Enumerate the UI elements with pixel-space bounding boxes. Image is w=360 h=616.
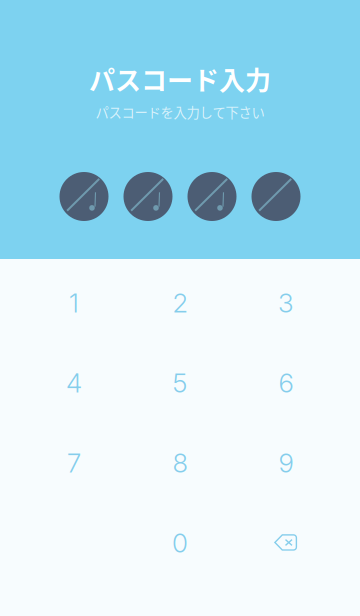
staticText: 7: [67, 447, 81, 479]
button[interactable]: 4: [21, 343, 127, 423]
staticText: 1: [69, 287, 79, 319]
button[interactable]: 3: [233, 263, 339, 343]
button[interactable]: 5: [127, 343, 233, 423]
staticText: パスコード入力: [89, 60, 271, 98]
staticText: 0: [172, 527, 188, 559]
button[interactable]: 7: [21, 423, 127, 503]
staticText: 6: [278, 367, 293, 399]
button[interactable]: 1: [21, 263, 127, 343]
button[interactable]: 6: [233, 343, 339, 423]
staticText: 8: [172, 447, 187, 479]
button[interactable]: 2: [127, 263, 233, 343]
staticText: 9: [278, 447, 293, 479]
staticText: 4: [66, 367, 82, 399]
staticText: 3: [278, 287, 294, 319]
button[interactable]: 9: [233, 423, 339, 503]
staticText: 2: [172, 287, 187, 319]
staticText: パスコードを入力して下さい: [95, 102, 264, 122]
button[interactable]: 0: [127, 503, 233, 583]
staticText: 5: [172, 367, 187, 399]
button[interactable]: Delete: [233, 503, 339, 583]
button[interactable]: 8: [127, 423, 233, 503]
